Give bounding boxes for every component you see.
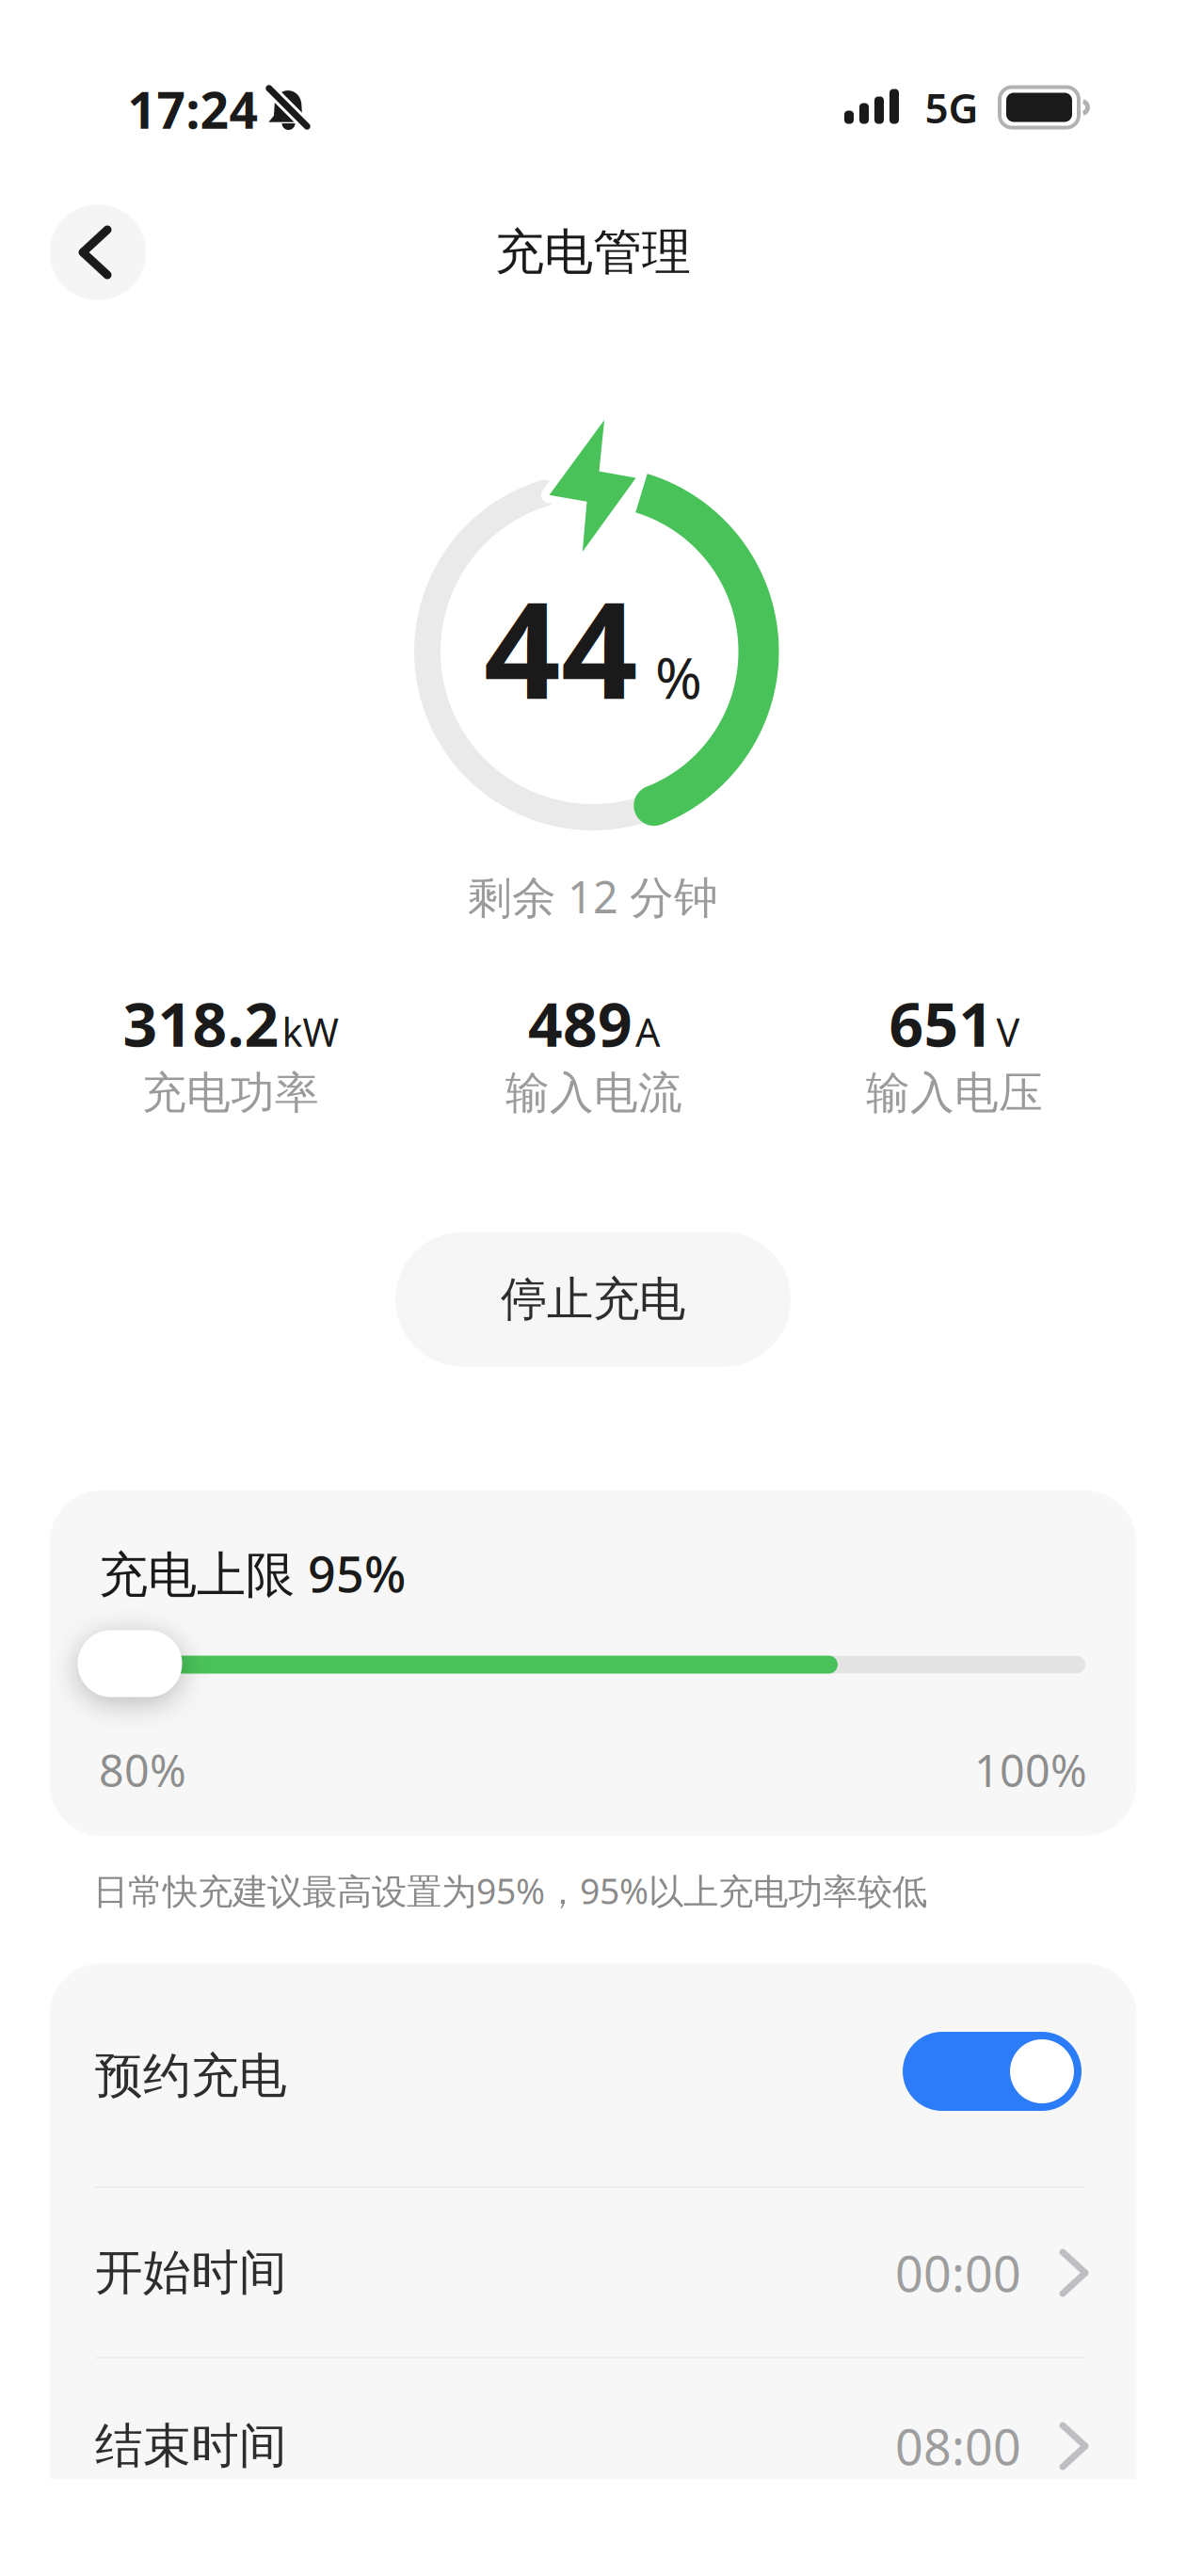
button[interactable]: 开始时间: [95, 2240, 1085, 2305]
staticText: 输入电压: [866, 1066, 1043, 1120]
staticText: 08:00: [895, 2414, 1021, 2479]
button[interactable]: Back: [50, 204, 146, 300]
staticText: 预约充电: [95, 2047, 287, 2105]
staticText: 日常快充建议最高设置为95%，95%以上充电功率较低: [93, 1867, 927, 1914]
staticText: 80%: [99, 1741, 186, 1799]
button[interactable]: Charge limit slider: [78, 1630, 182, 1697]
staticText: 5G: [925, 80, 978, 135]
staticText: 00:00: [895, 2240, 1021, 2305]
staticText: 结束时间: [95, 2417, 287, 2475]
staticText: V: [996, 1006, 1020, 1058]
staticText: %: [655, 639, 702, 715]
button[interactable]: 结束时间: [95, 2414, 1085, 2479]
button[interactable]: 预约充电: [903, 2032, 1082, 2111]
button[interactable]: 停止充电: [395, 1232, 791, 1367]
staticText: 17:24: [128, 76, 258, 143]
staticText: 充电上限 95%: [99, 1541, 406, 1606]
staticText: 充电管理: [495, 222, 691, 282]
staticText: 44: [484, 558, 638, 736]
staticText: 充电功率: [142, 1066, 319, 1120]
staticText: 输入电流: [505, 1066, 682, 1120]
staticText: 489: [528, 983, 633, 1063]
staticText: 剩余 12 分钟: [468, 867, 718, 926]
staticText: A: [635, 1006, 660, 1058]
staticText: 停止充电: [501, 1271, 685, 1328]
staticText: 开始时间: [95, 2244, 287, 2302]
staticText: kW: [282, 1006, 338, 1058]
staticText: 651: [889, 983, 994, 1063]
staticText: 100%: [974, 1741, 1087, 1799]
staticText: 318.2: [123, 983, 279, 1063]
